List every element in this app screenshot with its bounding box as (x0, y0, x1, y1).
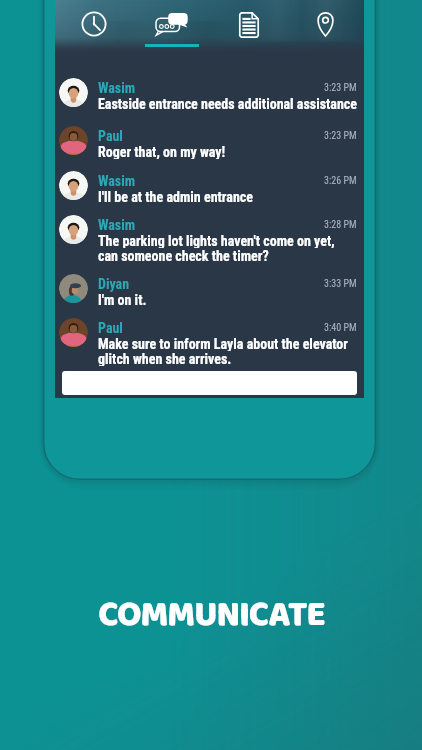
button[interactable]: Diyan (59, 275, 357, 319)
button[interactable] (62, 371, 357, 395)
staticText: I'll be at the admin entrance (98, 189, 253, 204)
button[interactable]: Wasim (59, 172, 357, 216)
staticText: COMMUNICATE (98, 587, 325, 643)
staticText: Eastside entrance needs additional assis… (98, 96, 357, 111)
staticText: 3:33 PM (324, 278, 357, 290)
button[interactable]: Wasim (59, 216, 357, 275)
button[interactable]: Paul (59, 319, 357, 378)
staticText: I'm on it. (98, 292, 147, 307)
staticText: can someone check the timer? (98, 248, 269, 263)
staticText: Make sure to inform Layla about the elev… (98, 336, 348, 351)
button[interactable]: Documents (210, 0, 287, 52)
button[interactable]: Paul (59, 127, 357, 172)
staticText: Roger that, on my way! (98, 144, 226, 159)
staticText: 3:40 PM (324, 322, 357, 334)
staticText: 3:28 PM (324, 219, 357, 231)
staticText: Paul (98, 128, 123, 144)
staticText: Wasim (98, 217, 136, 233)
button[interactable]: Recent (55, 0, 133, 52)
button[interactable]: Wasim (59, 79, 357, 127)
staticText: Diyan (98, 276, 130, 292)
staticText: Wasim (98, 80, 136, 96)
staticText: Wasim (98, 173, 136, 189)
button[interactable]: Messages (133, 0, 210, 52)
staticText: 3:23 PM (324, 82, 357, 94)
staticText: Paul (98, 320, 123, 336)
staticText: 3:26 PM (324, 175, 357, 187)
button[interactable]: Locations (287, 0, 364, 52)
staticText: glitch when she arrives. (98, 351, 232, 366)
staticText: The parking lot lights haven't come on y… (98, 233, 335, 248)
staticText: 3:23 PM (324, 130, 357, 142)
